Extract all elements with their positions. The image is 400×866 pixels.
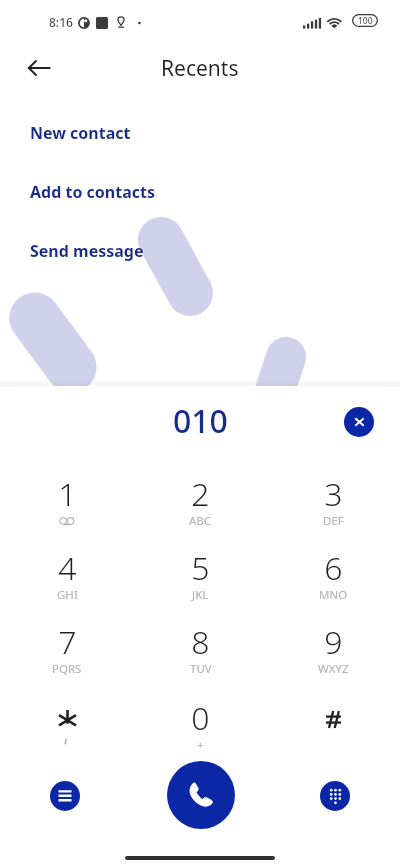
staticText: 0 [191,696,210,740]
button[interactable]: 3 [267,465,400,525]
button[interactable]: 4 [0,539,134,599]
staticText: JKL [192,587,209,603]
staticText: Recents [161,54,239,83]
button[interactable]: Send message [30,239,144,263]
button[interactable]: 9 [267,613,400,673]
staticText: 8:16 [49,14,73,30]
staticText: MNO [319,587,348,603]
button[interactable]: New contact [30,121,131,145]
staticText: 1 [58,472,77,516]
staticText: 010 [173,399,228,443]
button[interactable]: 7 [0,613,134,673]
staticText: + [197,737,204,753]
staticText: 6 [324,546,343,590]
button[interactable]: 1 [0,465,134,525]
staticText: WXYZ [318,661,349,677]
staticText: Add to contacts [30,181,155,203]
staticText: 100 [358,15,373,27]
button[interactable]: 5 [134,539,267,599]
staticText: 7 [58,620,77,664]
button[interactable] [267,689,400,749]
button[interactable] [0,689,134,749]
staticText: 4 [58,546,77,590]
button[interactable]: 8 [134,613,267,673]
staticText: 2 [191,472,210,516]
button[interactable]: More options [50,781,80,811]
button[interactable]: Back [16,45,61,90]
staticText: GHI [57,587,78,603]
button[interactable]: Keypad [320,781,350,811]
button[interactable]: 0 [134,689,267,749]
button[interactable]: Add to contacts [30,180,155,204]
staticText: 5 [191,546,210,590]
button[interactable]: 6 [267,539,400,599]
staticText: TUV [190,661,212,677]
staticText: 9 [324,620,343,664]
staticText: Send message [30,240,144,262]
staticText: PQRS [52,661,82,677]
button[interactable]: 2 [134,465,267,525]
staticText: 3 [324,472,343,516]
staticText: DEF [323,513,344,529]
staticText: ABC [189,513,212,529]
staticText: New contact [30,122,131,144]
staticText: 8 [191,620,210,664]
button[interactable]: Clear [344,407,374,437]
button[interactable]: Call [167,761,235,829]
